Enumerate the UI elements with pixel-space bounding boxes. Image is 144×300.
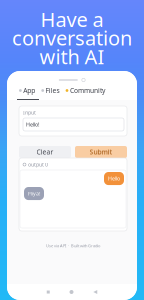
button[interactable]: Clear (19, 146, 71, 158)
button[interactable]: App (19, 86, 35, 95)
button[interactable]: Recent apps (47, 290, 50, 293)
staticText: App (23, 86, 35, 95)
staticText: Input (23, 109, 36, 116)
button[interactable]: Community (66, 86, 105, 95)
staticText: Hello (108, 175, 120, 182)
staticText: output 0 (28, 161, 48, 168)
staticText: · (68, 243, 69, 248)
staticText: Clear (36, 148, 53, 156)
button[interactable]: Back (93, 290, 97, 294)
staticText: Files (46, 86, 60, 95)
staticText: Hiya! (28, 190, 40, 197)
staticText: Use via API (46, 243, 66, 248)
staticText: Built with Gradio (71, 243, 100, 248)
staticText: Submit (89, 148, 112, 156)
staticText: Hello! (26, 121, 39, 128)
staticText: Community (70, 86, 105, 95)
staticText: conversation (12, 25, 132, 51)
staticText: Have a (40, 6, 103, 33)
button[interactable]: Files (41, 86, 60, 95)
button[interactable]: Submit (75, 146, 127, 158)
staticText: with AI (39, 43, 104, 70)
button[interactable]: Home (69, 290, 73, 294)
